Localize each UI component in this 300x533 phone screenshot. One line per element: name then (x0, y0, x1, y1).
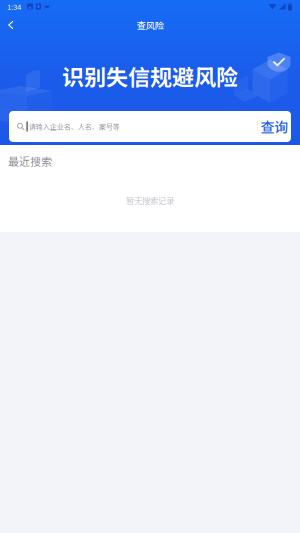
staticText: 请输入企业名、人名、案号等 (29, 121, 120, 132)
button[interactable]: 查询 (258, 111, 291, 142)
staticText: 暂无搜索记录 (126, 194, 174, 206)
staticText: 查风险 (136, 18, 163, 32)
staticText: 最近搜索 (8, 153, 52, 169)
staticText: 识别失信规避风险 (62, 60, 238, 92)
staticText: 查询 (260, 116, 288, 137)
button[interactable]: Back (0, 13, 22, 37)
staticText: 1:34 (7, 1, 21, 12)
